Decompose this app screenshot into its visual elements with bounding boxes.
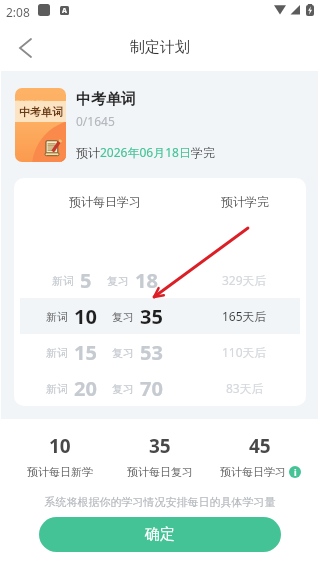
- button[interactable]: 新词: [20, 334, 300, 370]
- staticText: 复习: [112, 346, 134, 360]
- staticText: 制定计划: [130, 38, 190, 57]
- staticText: 35: [149, 433, 171, 459]
- staticText: 10: [49, 433, 71, 459]
- button[interactable]: 新词: [20, 370, 300, 406]
- staticText: 45: [249, 433, 271, 459]
- button[interactable]: 新词: [20, 298, 300, 334]
- staticText: 确定: [145, 525, 175, 544]
- staticText: 15: [74, 339, 97, 366]
- staticText: 53: [140, 339, 163, 366]
- staticText: 110天后: [222, 344, 267, 360]
- staticText: 10: [74, 303, 97, 330]
- staticText: 165天后: [222, 308, 267, 324]
- staticText: 系统将根据你的学习情况安排每日的具体学习量: [0, 495, 320, 509]
- staticText: 2:08: [6, 4, 30, 20]
- staticText: 18: [135, 267, 158, 294]
- staticText: 新词: [46, 346, 68, 360]
- staticText: 中考单词: [19, 105, 63, 119]
- staticText: i: [294, 466, 297, 478]
- staticText: 预计学完: [221, 194, 269, 209]
- staticText: 329天后: [222, 272, 267, 288]
- staticText: 0/1645: [76, 113, 115, 129]
- staticText: 新词: [46, 382, 68, 396]
- staticText: 20: [74, 375, 97, 402]
- button[interactable]: Back: [8, 31, 42, 65]
- staticText: 70: [140, 375, 163, 402]
- button[interactable]: 新词: [20, 262, 300, 298]
- staticText: 83天后: [226, 380, 264, 396]
- staticText: PHIMI ENGLISH: [15, 96, 66, 120]
- button[interactable]: 确定: [39, 517, 281, 552]
- staticText: 中考单词: [76, 90, 136, 109]
- button[interactable]: Info: [289, 466, 301, 478]
- staticText: 预计每日学习: [69, 194, 141, 209]
- staticText: 35: [140, 303, 163, 330]
- staticText: 预计每日新学: [27, 465, 93, 479]
- staticText: 预计2026年06月18日学完: [76, 144, 215, 160]
- staticText: 复习: [107, 274, 129, 288]
- staticText: A: [62, 6, 67, 15]
- staticText: 复习: [112, 382, 134, 396]
- staticText: 新词: [52, 274, 74, 288]
- staticText: 预计每日学习: [220, 465, 286, 479]
- staticText: 新词: [46, 310, 68, 324]
- staticText: 预计每日复习: [127, 465, 193, 479]
- staticText: 5: [80, 267, 92, 294]
- staticText: 复习: [112, 310, 134, 324]
